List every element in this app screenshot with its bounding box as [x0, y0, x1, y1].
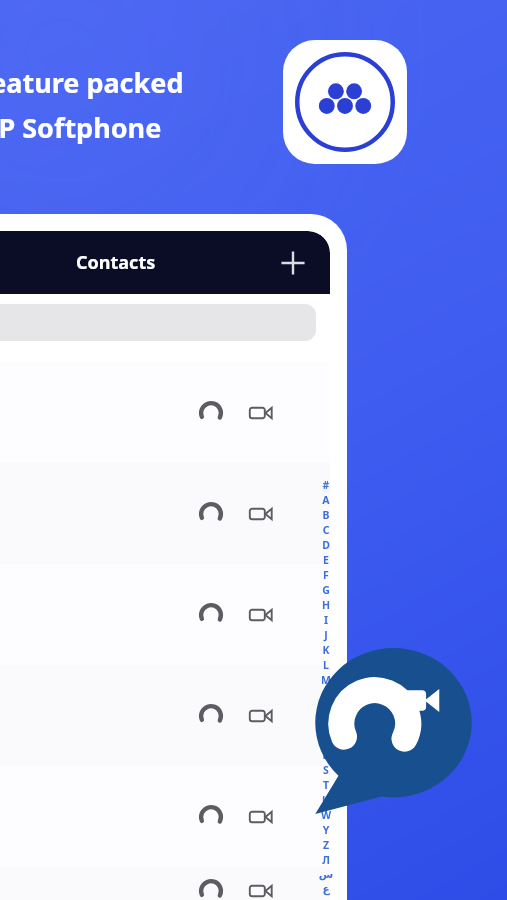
staticText: Л	[316, 853, 336, 868]
staticText: E	[316, 553, 336, 568]
button[interactable]: Video call	[248, 802, 278, 832]
staticText: VoIP Softphone	[0, 109, 162, 146]
button[interactable]: Alphabet index	[316, 478, 336, 898]
button[interactable]: Call	[196, 802, 226, 832]
staticText: D	[316, 538, 336, 553]
staticText: M	[316, 673, 336, 688]
staticText: U	[316, 793, 336, 808]
staticText: L	[316, 658, 336, 673]
staticText: I	[316, 613, 336, 628]
button[interactable]: Video call	[248, 876, 278, 900]
staticText: R	[316, 748, 336, 763]
button[interactable]: Call	[196, 876, 226, 900]
staticText: G	[316, 583, 336, 598]
button[interactable]: App icon	[283, 40, 407, 164]
staticText: T	[316, 778, 336, 793]
button[interactable]: Call	[0, 665, 330, 766]
staticText: J	[316, 628, 336, 643]
staticText: S	[316, 763, 336, 778]
staticText: #	[316, 478, 336, 493]
button[interactable]: Video call	[248, 600, 278, 630]
button[interactable]: Video call	[248, 701, 278, 731]
staticText: P	[316, 718, 336, 733]
staticText: Y	[316, 823, 336, 838]
staticText: A	[316, 493, 336, 508]
staticText: O	[316, 703, 336, 718]
staticText: س	[316, 868, 336, 883]
button[interactable]: Call	[0, 867, 330, 900]
button[interactable]: Video call	[248, 398, 278, 428]
button[interactable]: New video call	[312, 648, 475, 814]
staticText: ع	[316, 883, 336, 898]
staticText: W	[316, 808, 336, 823]
staticText: A feature packed	[0, 64, 184, 101]
staticText: C	[316, 523, 336, 538]
button[interactable]: Call	[0, 463, 330, 564]
staticText: B	[316, 508, 336, 523]
button[interactable]: Call	[196, 600, 226, 630]
button[interactable]: Call	[196, 398, 226, 428]
button[interactable]: Call	[0, 564, 330, 665]
staticText: F	[316, 568, 336, 583]
staticText: H	[316, 598, 336, 613]
button[interactable]: Call	[196, 701, 226, 731]
button[interactable]: Call	[0, 362, 330, 463]
button[interactable]: Call	[0, 766, 330, 867]
button[interactable]: Video call	[248, 499, 278, 529]
staticText: Q	[316, 733, 336, 748]
staticText: Z	[316, 838, 336, 853]
button[interactable]: Add contact	[276, 246, 310, 280]
staticText: K	[316, 643, 336, 658]
staticText: N	[316, 688, 336, 703]
button[interactable]: Call	[196, 499, 226, 529]
button[interactable]: Contacts	[76, 250, 156, 275]
